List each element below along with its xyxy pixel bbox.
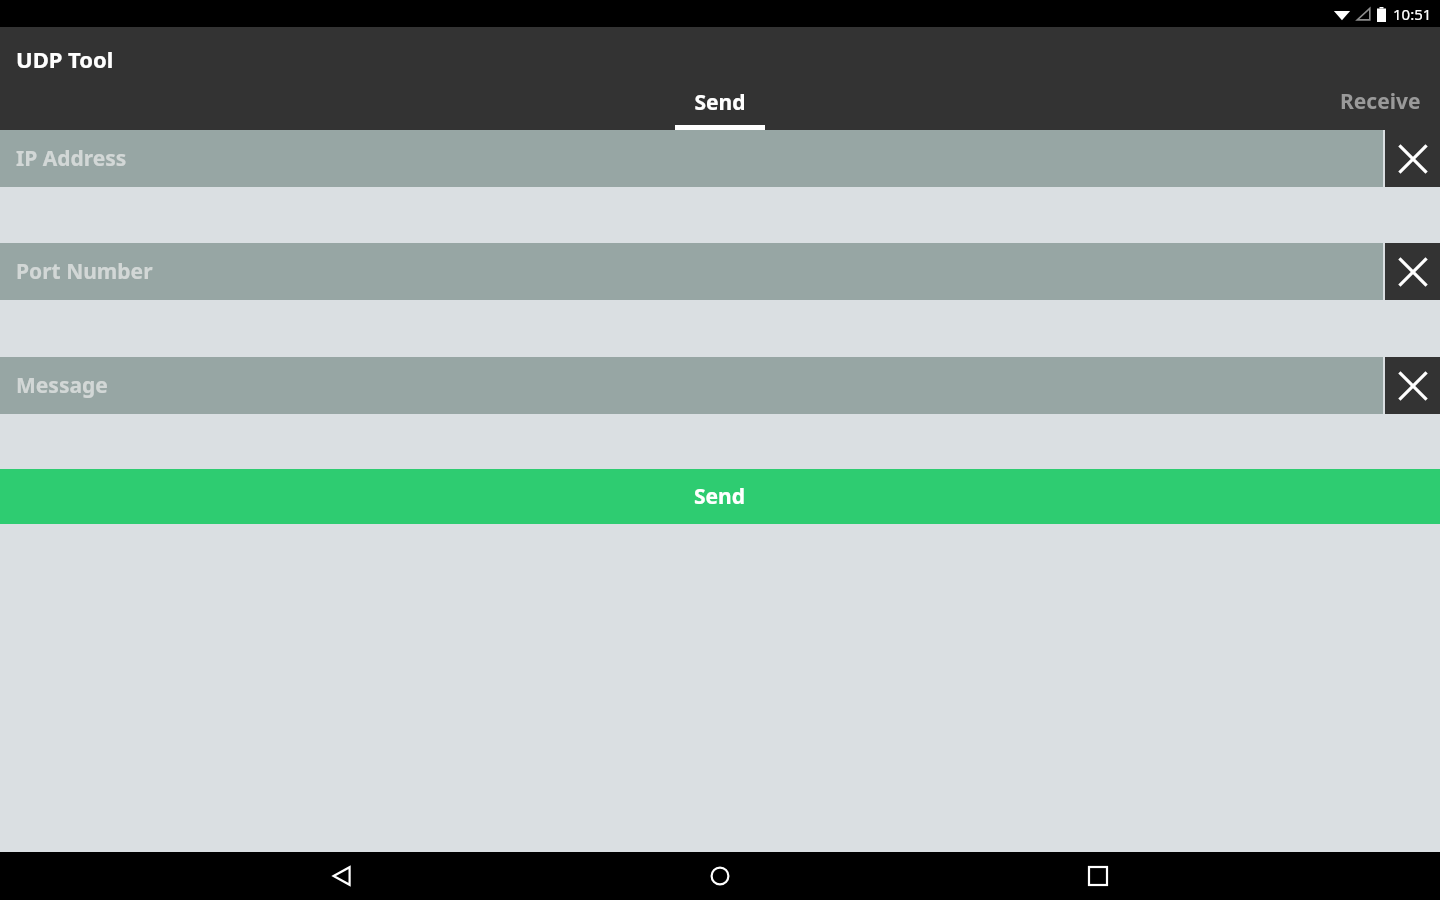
staticText: Send — [694, 482, 746, 511]
staticText: Receive — [1340, 87, 1421, 116]
button[interactable]: Clear Port Number — [1385, 243, 1440, 300]
button[interactable]: Send — [0, 469, 1440, 524]
button[interactable]: Receive — [1340, 82, 1440, 130]
button[interactable]: Home — [684, 852, 756, 900]
button[interactable]: Clear IP Address — [1385, 130, 1440, 187]
staticText: Port Number — [16, 257, 153, 286]
staticText: IP Address — [16, 144, 127, 173]
button[interactable]: Message — [0, 357, 1383, 414]
staticText: Message — [16, 371, 108, 400]
staticText: UDP Tool — [16, 44, 114, 74]
button[interactable]: Recent apps — [1062, 852, 1134, 900]
button[interactable]: Send — [675, 82, 765, 130]
button[interactable]: Back — [306, 852, 378, 900]
button[interactable]: Port Number — [0, 243, 1383, 300]
button[interactable]: Clear Message — [1385, 357, 1440, 414]
staticText: Send — [694, 88, 746, 117]
button[interactable]: IP Address — [0, 130, 1383, 187]
staticText: 10:51 — [1393, 4, 1432, 24]
